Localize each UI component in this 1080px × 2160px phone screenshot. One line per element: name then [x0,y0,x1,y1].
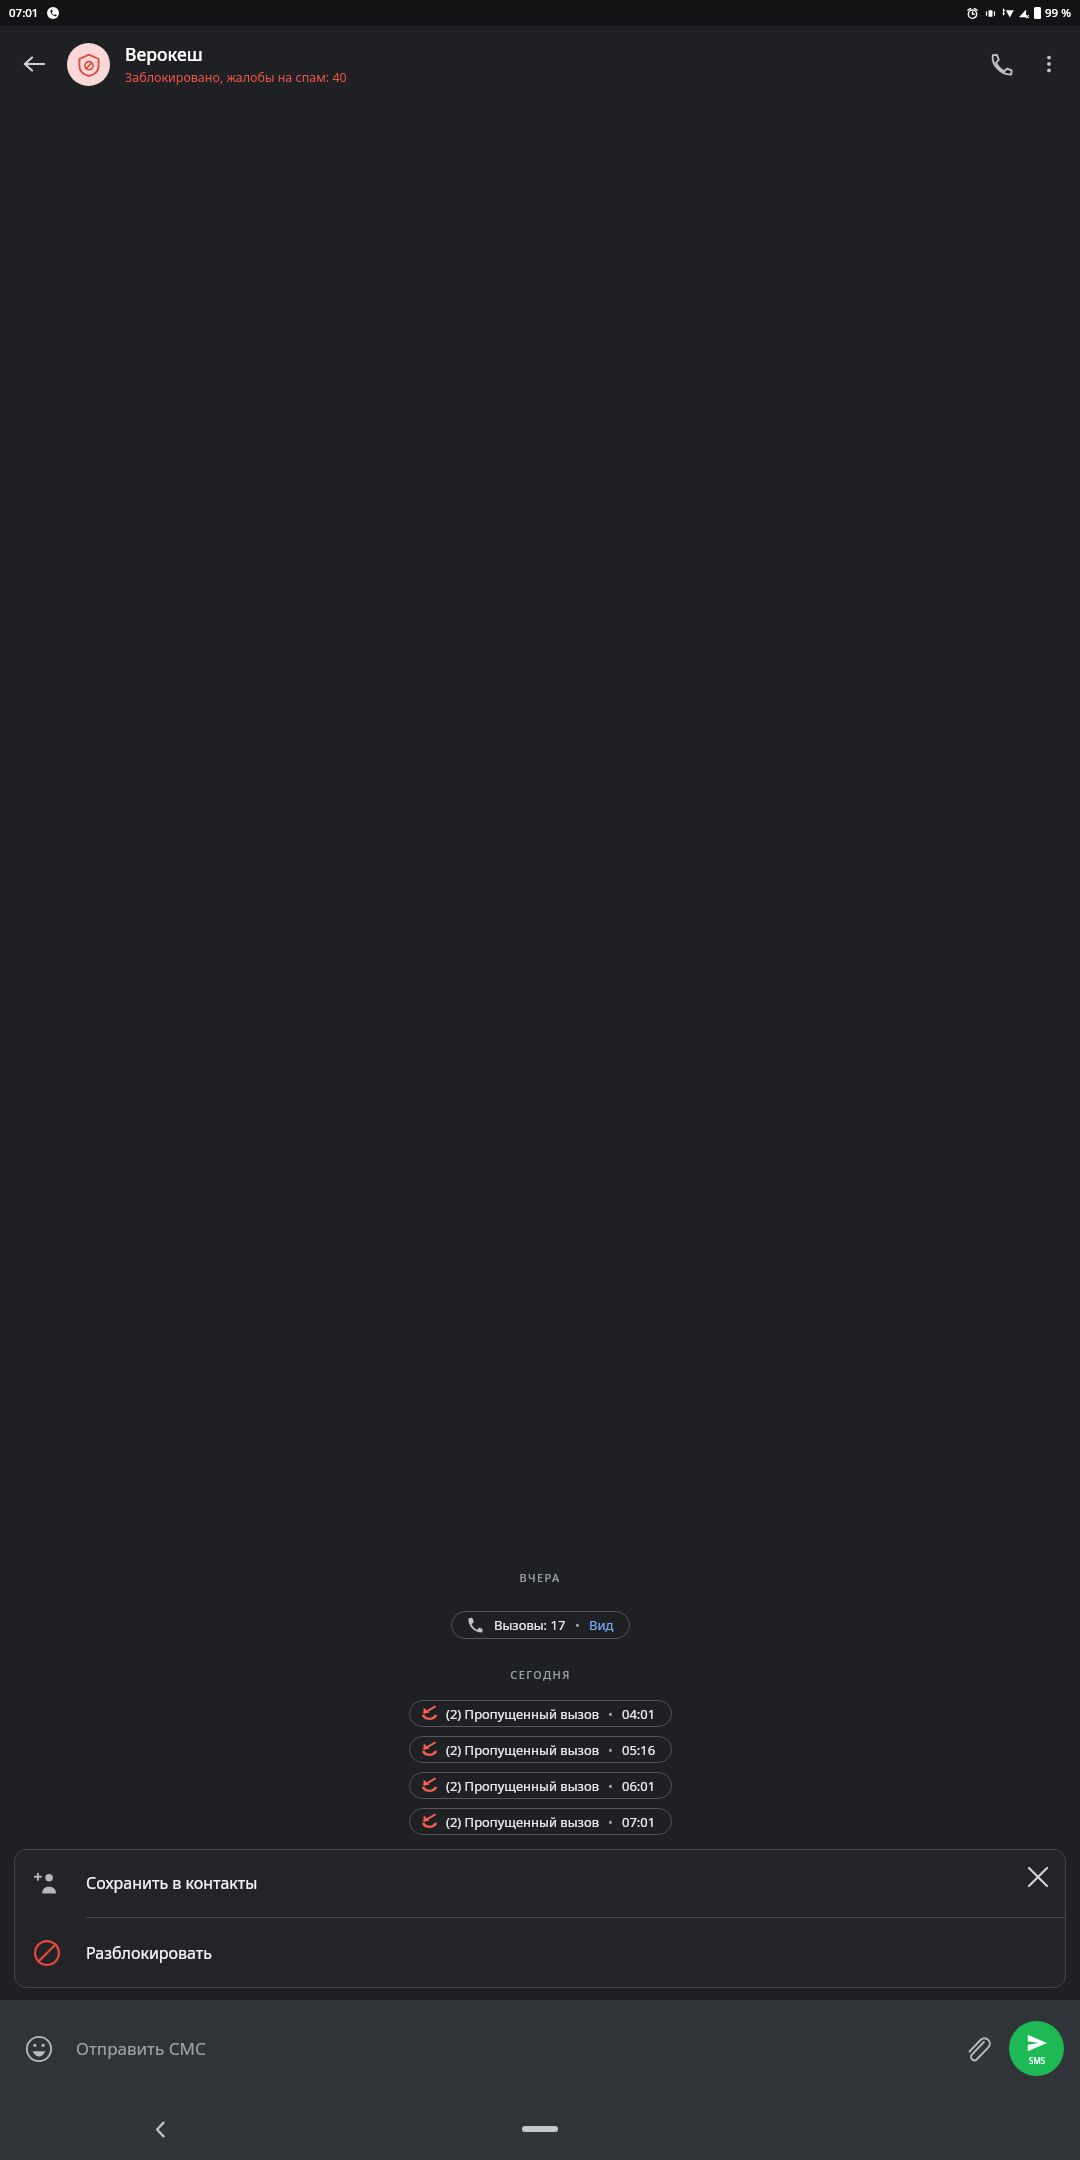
staticText: Вызовы: 17 [494,1616,566,1634]
button[interactable]: Закрыть [1016,1855,1060,1899]
staticText: Разблокировать [86,1942,213,1964]
button[interactable]: Назад [136,2105,184,2153]
staticText: 07:01 [9,5,39,21]
button[interactable]: (2) Пропущенный вызов [409,1808,672,1835]
staticText: • [608,1741,613,1759]
staticText: 04:01 [622,1705,656,1723]
staticText: SMS [1029,2055,1046,2066]
staticText: (2) Пропущенный вызов [446,1741,599,1759]
button[interactable]: (2) Пропущенный вызов [409,1700,672,1727]
button[interactable]: Отправить SMS [1009,2021,1064,2076]
button[interactable]: Прикрепить [953,2025,1001,2073]
staticText: Вид [589,1616,614,1634]
button[interactable]: Разблокировать [14,1918,1066,1988]
button[interactable]: Ещё [1026,41,1072,87]
staticText: (2) Пропущенный вызов [446,1777,599,1795]
staticText: Сохранить в контакты [86,1872,258,1894]
button[interactable]: (2) Пропущенный вызов [409,1736,672,1763]
staticText: • [608,1705,613,1723]
staticText: 99 % [1045,5,1071,21]
staticText: 05:16 [622,1741,656,1759]
button[interactable]: (2) Пропущенный вызов [409,1772,672,1799]
staticText: (2) Пропущенный вызов [446,1813,599,1831]
button[interactable]: Назад [10,40,58,88]
button[interactable]: Фото контакта [67,43,110,86]
staticText: • [575,1616,580,1634]
staticText: 07:01 [622,1813,656,1831]
staticText: • [608,1777,613,1795]
staticText: ВЧЕРА [519,1570,561,1585]
button[interactable]: Отправить СМС [76,2037,953,2060]
button[interactable]: Сохранить в контакты [14,1849,1066,1917]
staticText: (2) Пропущенный вызов [446,1705,599,1723]
staticText: СЕГОДНЯ [510,1667,571,1682]
button[interactable]: Позвонить [976,39,1026,89]
button[interactable]: Вызовы: 17 [451,1611,630,1639]
button[interactable]: Эмодзи [16,2026,62,2072]
staticText: • [608,1813,613,1831]
staticText: Заблокировано, жалобы на спам: 40 [125,69,347,86]
staticText: Верокеш [125,42,203,66]
staticText: 06:01 [622,1777,656,1795]
staticText: Отправить СМС [76,2037,206,2060]
button[interactable]: Главный экран [512,2105,568,2153]
button[interactable]: Верокеш [125,42,976,86]
